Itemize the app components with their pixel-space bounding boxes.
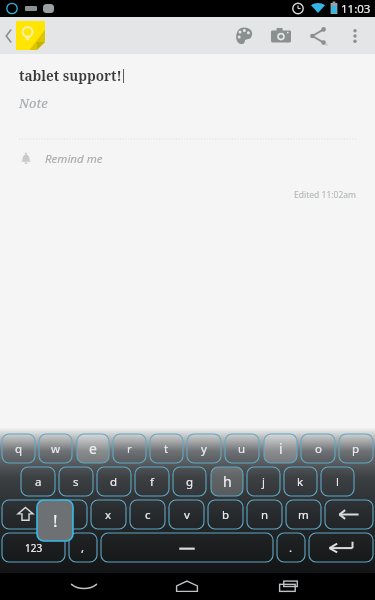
staticText: z bbox=[67, 507, 73, 523]
button[interactable]: t bbox=[150, 434, 183, 463]
button[interactable]: g bbox=[173, 467, 206, 496]
staticText: ! bbox=[53, 509, 58, 532]
staticText: Remind me bbox=[45, 151, 103, 167]
button[interactable]: k bbox=[284, 467, 317, 496]
staticText: t bbox=[164, 441, 169, 457]
button[interactable]: 123 bbox=[2, 533, 65, 562]
staticText: g bbox=[186, 474, 194, 490]
staticText: r bbox=[127, 441, 132, 457]
staticText: c bbox=[145, 507, 151, 523]
staticText: w bbox=[51, 441, 61, 457]
staticText: n bbox=[261, 507, 269, 523]
staticText: p bbox=[352, 441, 360, 457]
button[interactable]: Exclamation mark key bbox=[37, 500, 73, 541]
staticText: u bbox=[238, 441, 246, 457]
button[interactable]: u bbox=[225, 434, 259, 463]
staticText: h bbox=[223, 472, 232, 491]
button[interactable]: y bbox=[187, 434, 221, 463]
staticText: . bbox=[289, 540, 293, 556]
button[interactable]: s bbox=[59, 467, 93, 496]
staticText: 123 bbox=[25, 541, 43, 555]
button[interactable]: m bbox=[286, 500, 321, 529]
button[interactable]: d bbox=[97, 467, 131, 496]
staticText: Edited 11:02am bbox=[19, 189, 356, 201]
button[interactable]: e bbox=[76, 434, 109, 463]
staticText: l bbox=[336, 474, 339, 490]
button[interactable]: v bbox=[169, 500, 204, 529]
staticText: e bbox=[89, 439, 97, 458]
button[interactable]: Share bbox=[299, 17, 336, 54]
button[interactable]: f bbox=[135, 467, 169, 496]
staticText: 11:03 bbox=[341, 1, 371, 17]
button[interactable]: Enter bbox=[309, 533, 373, 562]
staticText: q bbox=[15, 441, 23, 457]
staticText: v bbox=[184, 507, 190, 523]
button[interactable]: r bbox=[113, 434, 146, 463]
staticText: a bbox=[35, 474, 42, 490]
button[interactable]: x bbox=[91, 500, 126, 529]
button[interactable]: l bbox=[321, 467, 354, 496]
staticText: f bbox=[150, 474, 154, 490]
button[interactable]: q bbox=[2, 434, 35, 463]
staticText: k bbox=[297, 474, 304, 490]
button[interactable]: Navigate up bbox=[0, 21, 51, 50]
button[interactable]: Space bbox=[101, 533, 273, 562]
button[interactable]: w bbox=[39, 434, 72, 463]
button[interactable]: More options bbox=[336, 17, 373, 54]
button[interactable]: , bbox=[69, 533, 97, 562]
button[interactable]: n bbox=[247, 500, 282, 529]
button[interactable]: i bbox=[263, 434, 297, 463]
staticText: , bbox=[81, 540, 85, 556]
button[interactable]: z bbox=[53, 500, 87, 529]
button[interactable]: p bbox=[339, 434, 373, 463]
staticText: y bbox=[201, 441, 207, 457]
staticText: m bbox=[298, 507, 309, 523]
button[interactable]: Backspace bbox=[325, 500, 373, 529]
button[interactable]: Change color bbox=[225, 17, 262, 54]
button[interactable]: Remind me bbox=[19, 151, 103, 167]
button[interactable]: . bbox=[277, 533, 305, 562]
button[interactable]: a bbox=[21, 467, 55, 496]
button[interactable]: tablet support! bbox=[19, 67, 122, 85]
button[interactable]: Recent apps bbox=[264, 573, 316, 600]
button[interactable]: Note bbox=[19, 94, 48, 112]
staticText: d bbox=[110, 474, 118, 490]
staticText: x bbox=[105, 507, 112, 523]
staticText: b bbox=[222, 507, 230, 523]
button[interactable]: Home bbox=[161, 573, 213, 600]
staticText: i bbox=[279, 439, 283, 458]
button[interactable]: Add image bbox=[262, 17, 299, 54]
button[interactable]: h bbox=[210, 467, 243, 496]
staticText: j bbox=[262, 474, 265, 490]
button[interactable]: c bbox=[130, 500, 165, 529]
staticText: s bbox=[73, 474, 79, 490]
button[interactable]: b bbox=[208, 500, 243, 529]
staticText: o bbox=[315, 441, 322, 457]
button[interactable]: j bbox=[247, 467, 280, 496]
button[interactable]: o bbox=[301, 434, 335, 463]
button[interactable]: Hide keyboard bbox=[58, 573, 110, 600]
button[interactable]: Shift bbox=[2, 500, 49, 529]
